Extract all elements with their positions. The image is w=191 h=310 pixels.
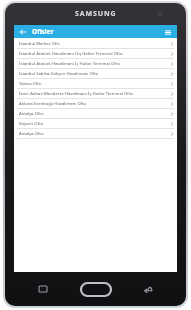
button[interactable]: Menu [163, 27, 173, 37]
button[interactable]: İstanbul Atatürk Havalimanı İç Hatlar Te… [14, 59, 177, 69]
staticText: İzmir Adnan Menderes Havalimanı İç Hatla… [19, 91, 168, 97]
staticText: Ankara Esenboğa Havalimanı Ofisi [19, 101, 168, 107]
staticText: İstanbul Atatürk Havalimanı İç Hatlar Te… [19, 61, 168, 67]
staticText: İstanbul Sabiha Gökçen Havalimanı Ofisi [19, 71, 168, 77]
button[interactable]: İzmir Adnan Menderes Havalimanı İç Hatla… [14, 89, 177, 99]
button[interactable]: İstanbul Merkez Ofis [14, 39, 177, 49]
staticText: İstanbul Merkez Ofis [19, 41, 168, 47]
button[interactable]: İstanbul Sabiha Gökçen Havalimanı Ofisi [14, 69, 177, 79]
button[interactable]: Ankara Esenboğa Havalimanı Ofisi [14, 99, 177, 109]
button[interactable]: Kayseri Ofisi [14, 119, 177, 129]
button[interactable]: Antalya Ofisi [14, 129, 177, 139]
staticText: Yalova Ofisi [19, 81, 168, 87]
button[interactable]: Antalya Ofisi [14, 109, 177, 119]
button[interactable]: İstanbul Atatürk Havalimanı Dış Hatlar T… [14, 49, 177, 59]
button[interactable]: Home [81, 283, 111, 296]
staticText: SAMSUNG [75, 9, 117, 19]
staticText: Ofisler [32, 27, 163, 36]
staticText: Antalya Ofisi [19, 131, 168, 137]
button[interactable]: Yalova Ofisi [14, 79, 177, 89]
staticText: İstanbul Atatürk Havalimanı Dış Hatlar T… [19, 51, 168, 57]
button[interactable]: Navigate up [18, 27, 28, 37]
button[interactable]: Recent apps [35, 281, 51, 297]
staticText: Antalya Ofisi [19, 111, 168, 117]
staticText: Kayseri Ofisi [19, 121, 168, 127]
button[interactable]: Back [140, 281, 156, 297]
